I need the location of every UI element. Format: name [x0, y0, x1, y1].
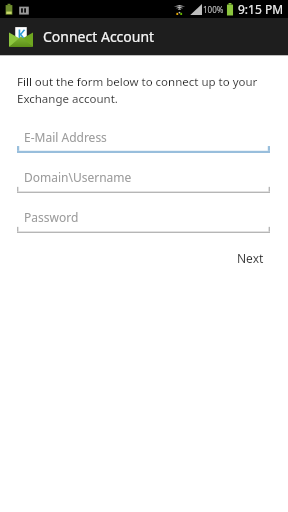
staticText: 100%	[203, 4, 224, 15]
staticText: Next	[237, 250, 264, 266]
button[interactable]: Password	[17, 205, 270, 233]
staticText: Password	[24, 209, 79, 225]
staticText: Domain\Username	[24, 169, 132, 185]
staticText: Connect Account	[43, 27, 155, 46]
staticText: E-Mail Address	[24, 129, 107, 145]
staticText: 9:15 PM	[238, 1, 284, 17]
button[interactable]: Next	[231, 245, 270, 271]
button[interactable]: Domain\Username	[17, 165, 270, 193]
button[interactable]: Connect Account	[0, 18, 288, 55]
staticText: Fill out the form below to connect up to…	[17, 74, 258, 106]
button[interactable]: E-Mail Address	[17, 125, 270, 153]
